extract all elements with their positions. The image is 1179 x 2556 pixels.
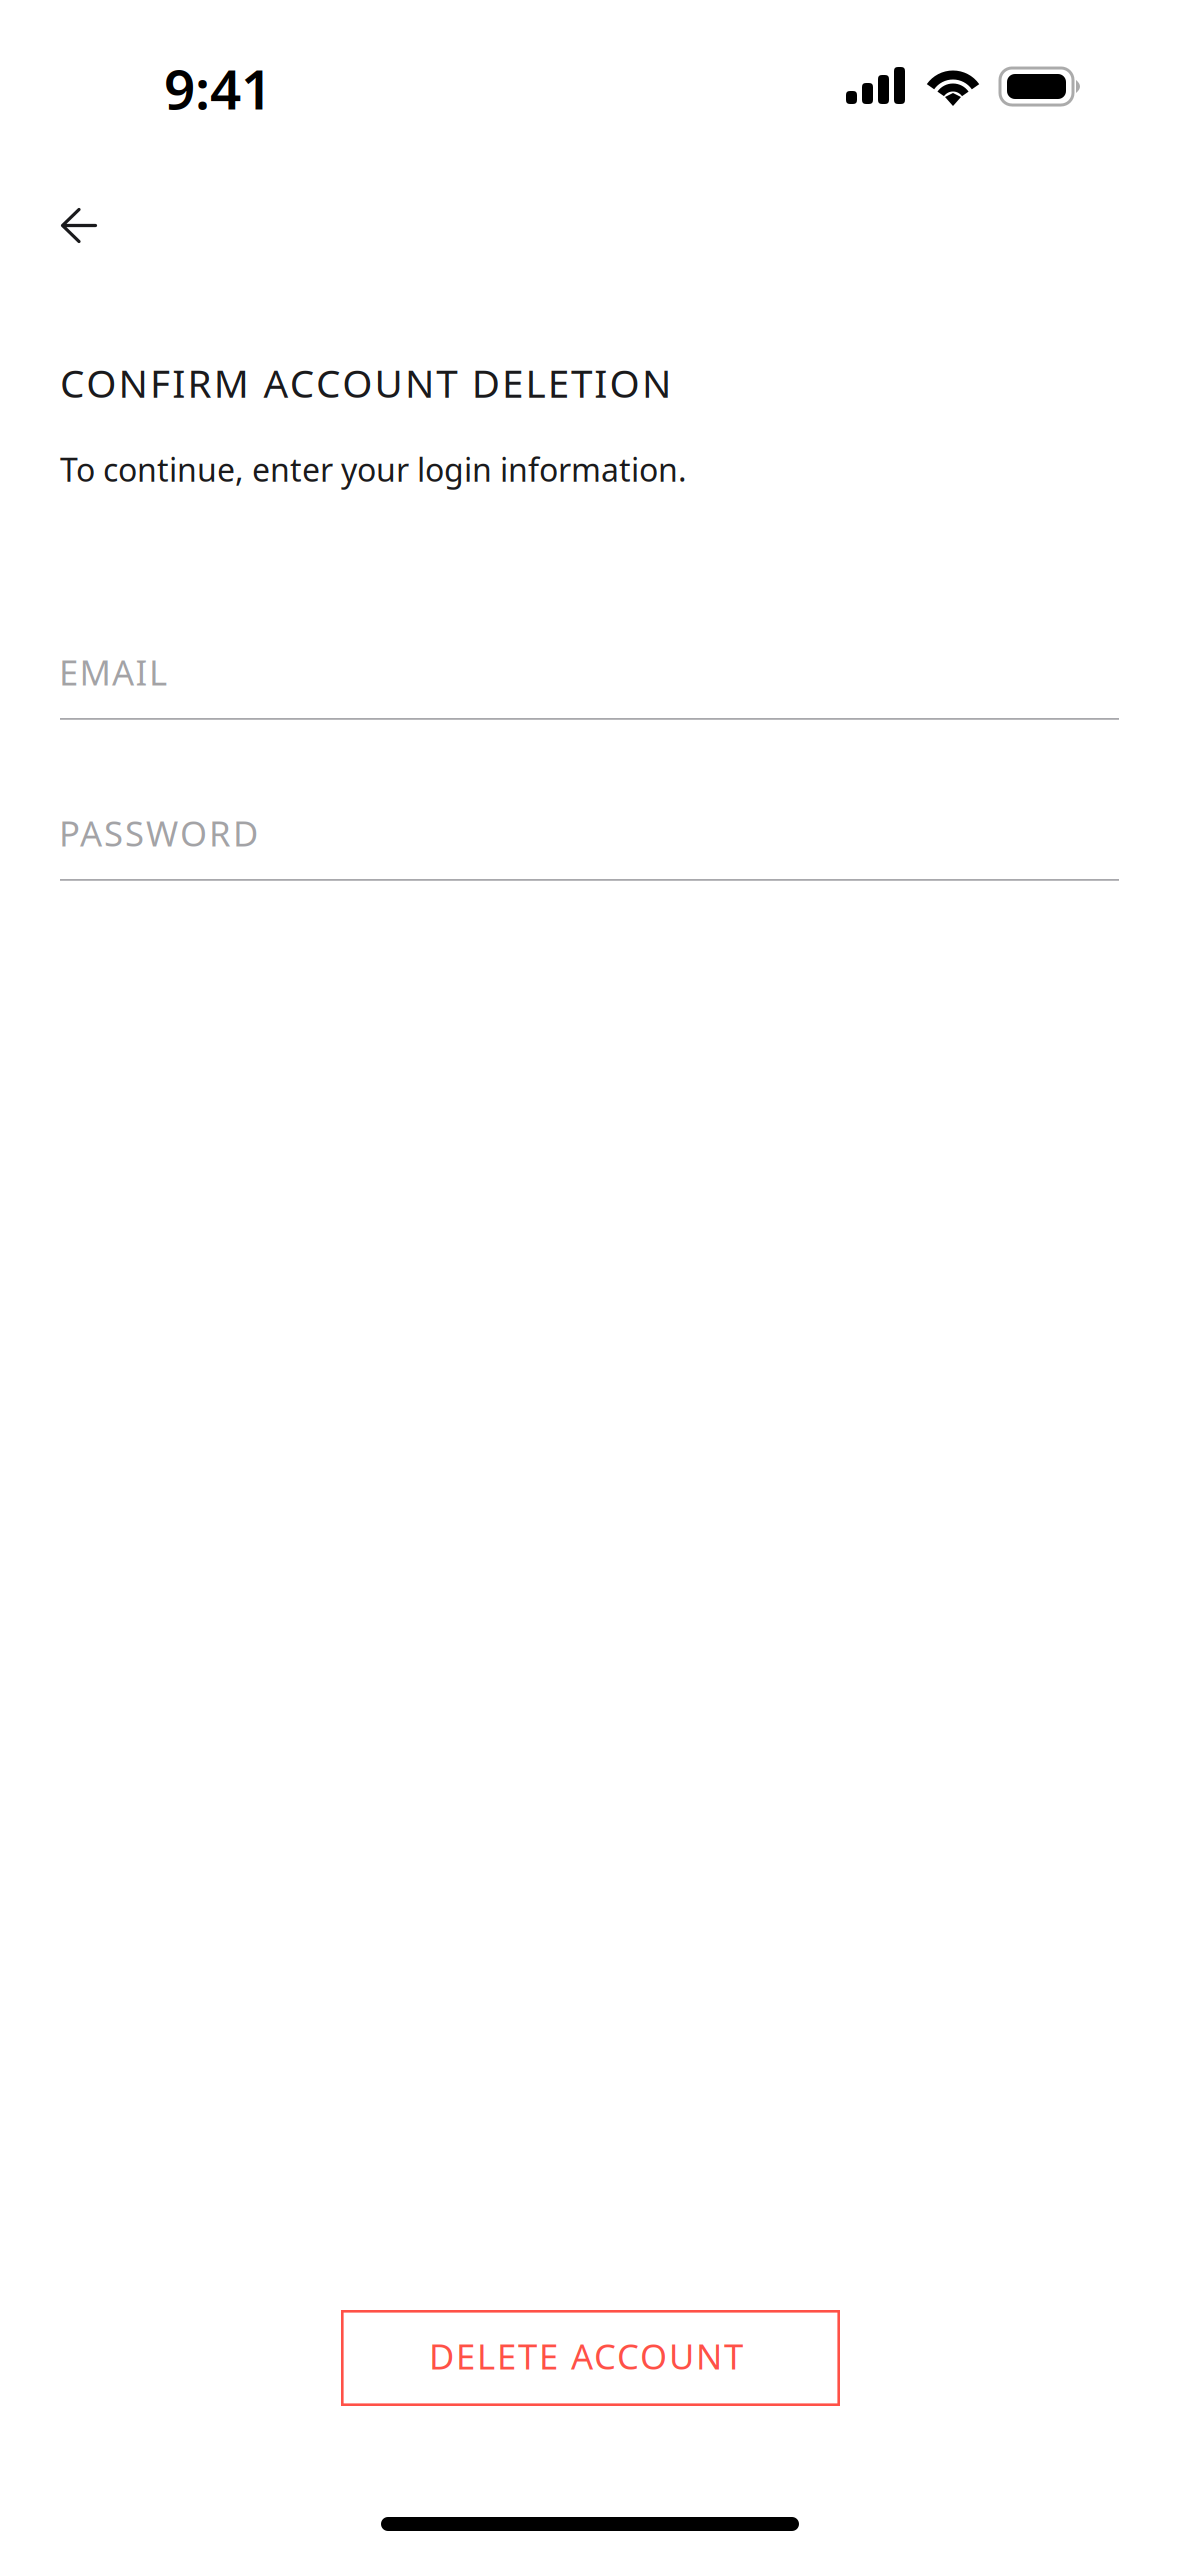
- staticText: 9:41: [164, 52, 272, 125]
- staticText: CONFIRM ACCOUNT DELETION: [60, 357, 671, 408]
- button[interactable]: Back: [19, 168, 139, 284]
- button[interactable]: DELETE ACCOUNT: [341, 2310, 840, 2406]
- staticText: EMAIL: [59, 649, 167, 695]
- staticText: PASSWORD: [59, 810, 258, 856]
- staticText: To continue, enter your login informatio…: [60, 448, 687, 490]
- staticText: DELETE ACCOUNT: [429, 2333, 743, 2379]
